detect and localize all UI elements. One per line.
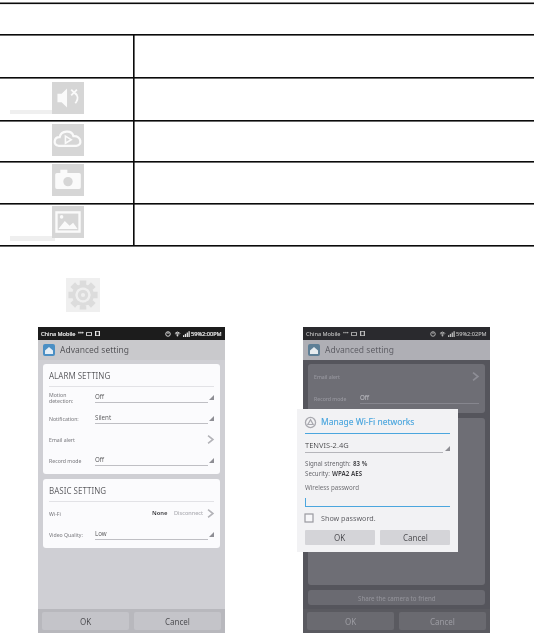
staticText: ••• bbox=[343, 330, 349, 337]
staticText: Email alert bbox=[49, 436, 75, 443]
staticText: Record mode bbox=[314, 395, 360, 402]
staticText: Disconnect bbox=[174, 509, 204, 517]
button[interactable]: OK bbox=[42, 612, 129, 630]
staticText: None bbox=[152, 509, 168, 517]
staticText: BASIC SETTING bbox=[314, 424, 372, 435]
staticText: 83 % bbox=[353, 459, 368, 467]
staticText: Video Quality: bbox=[49, 531, 95, 538]
staticText: OK bbox=[345, 616, 357, 627]
staticText: Cancel bbox=[165, 616, 190, 627]
staticText: Signal strength: bbox=[305, 459, 353, 467]
staticText: Manage Wi-Fi networks bbox=[321, 416, 415, 428]
staticText: Show password. bbox=[321, 513, 376, 523]
button[interactable]: Motion detection: bbox=[49, 387, 214, 408]
staticText: Email alert bbox=[314, 373, 340, 380]
staticText: Notification: bbox=[49, 415, 95, 422]
button[interactable]: Email alert bbox=[314, 364, 479, 388]
staticText: Wireless password bbox=[305, 483, 359, 491]
staticText: Advanced setting bbox=[325, 344, 394, 356]
button[interactable]: Cancel bbox=[380, 530, 450, 545]
button[interactable]: OK bbox=[307, 612, 394, 630]
staticText: OK bbox=[80, 616, 92, 627]
button[interactable]: Cancel bbox=[134, 612, 221, 630]
staticText: 59%2:02PM bbox=[456, 330, 487, 338]
button[interactable]: Cancel bbox=[399, 612, 486, 630]
button[interactable]: Settings bbox=[66, 278, 100, 312]
staticText: 59%2:00PM bbox=[191, 330, 222, 338]
button[interactable]: Email alert bbox=[49, 429, 214, 450]
staticText: Low bbox=[95, 529, 107, 537]
button[interactable]: OK bbox=[305, 530, 375, 545]
staticText: Security: bbox=[305, 469, 332, 477]
staticText: Cancel bbox=[430, 616, 455, 627]
button[interactable]: Show password. bbox=[305, 513, 376, 523]
staticText: Off bbox=[360, 393, 370, 401]
staticText: OK bbox=[334, 532, 346, 543]
staticText: Share the camera to friend bbox=[358, 594, 436, 602]
button[interactable]: Wi-Fi bbox=[49, 502, 214, 524]
button[interactable]: Notification: bbox=[49, 408, 214, 429]
button[interactable]: Video Quality: bbox=[49, 524, 214, 545]
staticText: Motion detection: bbox=[49, 391, 95, 405]
staticText: ALARM SETTING bbox=[49, 370, 111, 381]
staticText: ••• bbox=[78, 330, 84, 337]
staticText: Silent bbox=[95, 413, 112, 421]
staticText: China Mobile bbox=[306, 330, 341, 338]
staticText: Wi-Fi bbox=[49, 510, 61, 517]
staticText: BASIC SETTING bbox=[49, 485, 107, 496]
staticText: China Mobile bbox=[41, 330, 76, 338]
button[interactable]: Share the camera to friend bbox=[308, 590, 485, 605]
staticText: Off bbox=[95, 392, 105, 400]
button[interactable]: Record mode bbox=[314, 388, 479, 409]
staticText: Off bbox=[95, 455, 105, 463]
button[interactable]: TENVIS-2.4G bbox=[305, 440, 450, 453]
staticText: Cancel bbox=[403, 532, 428, 543]
button[interactable]: Record mode bbox=[49, 450, 214, 471]
staticText: Record mode bbox=[49, 457, 95, 464]
staticText: Advanced setting bbox=[60, 344, 129, 356]
staticText: TENVIS-2.4G bbox=[305, 440, 349, 450]
staticText: WPA2 AES bbox=[332, 469, 363, 477]
